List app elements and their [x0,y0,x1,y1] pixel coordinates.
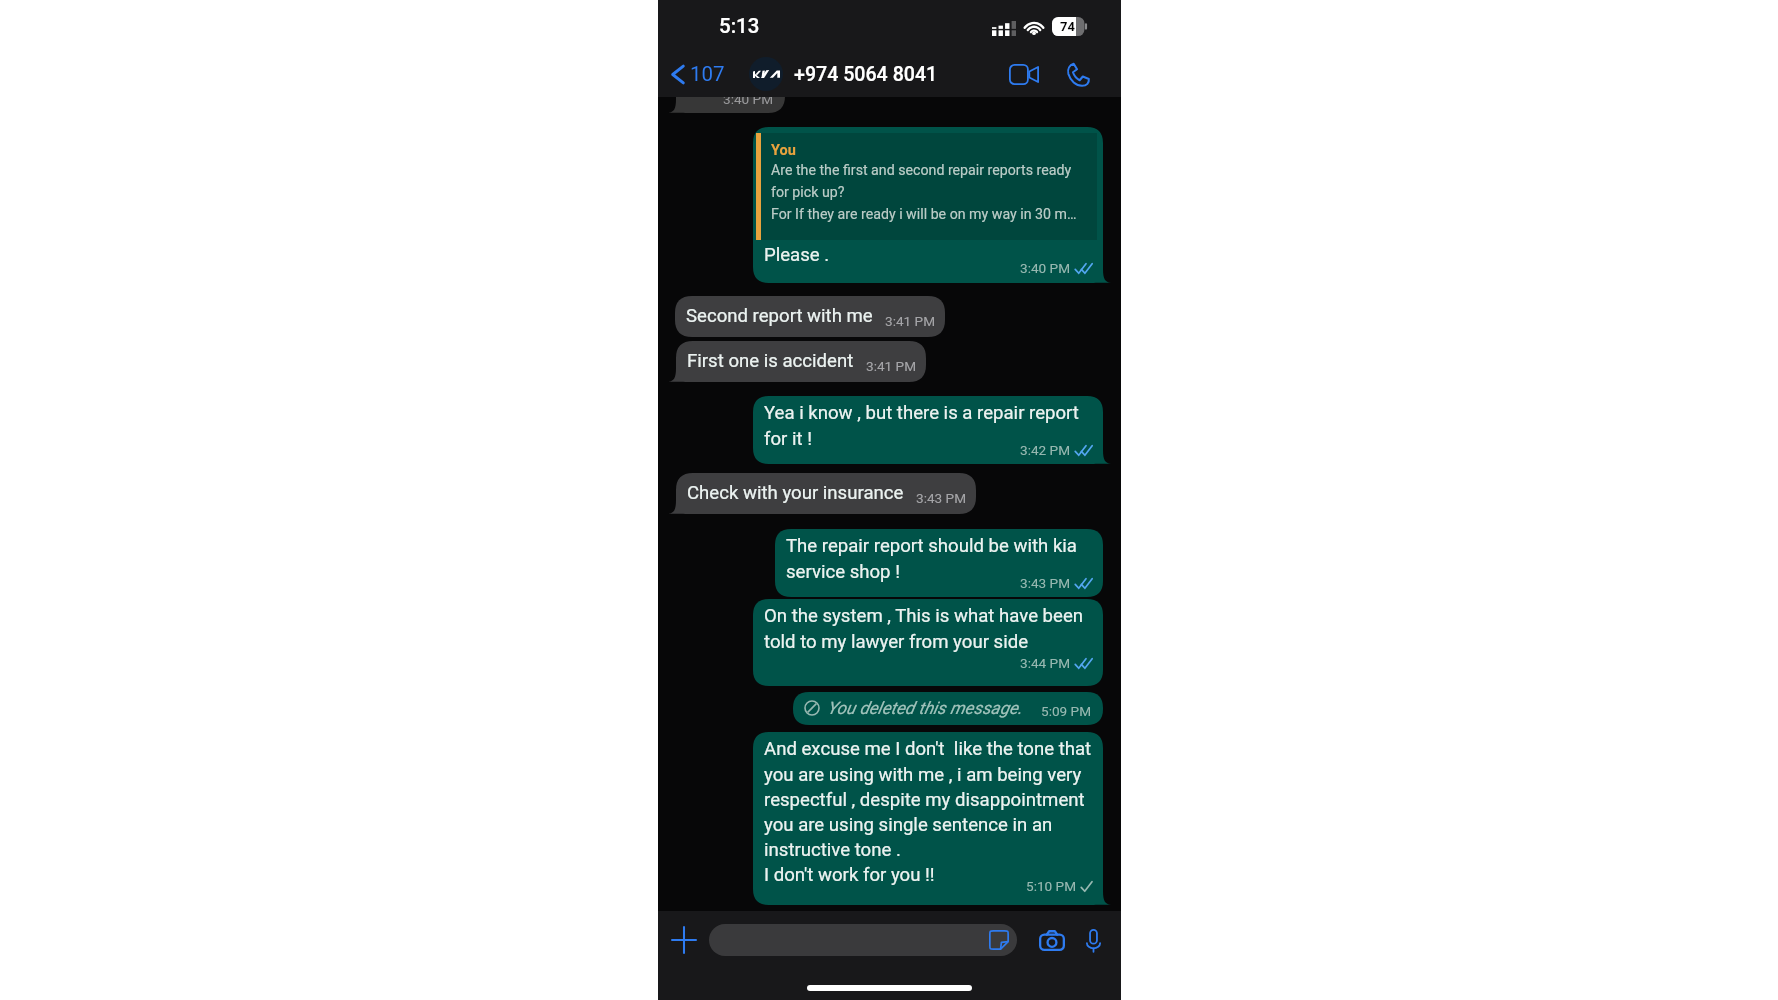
staticText: 5:09 PM [1041,703,1092,719]
staticText: Second report with me [686,305,873,327]
button[interactable]: Second report with me [675,296,945,337]
button[interactable]: And excuse me I don't like the tone that… [753,732,1111,905]
button[interactable]: You [753,127,1111,283]
staticText: +974 5064 8041 [794,63,938,86]
staticText: The repair report should be with kia ser… [786,535,1092,583]
button[interactable]: You deleted this message. [793,692,1103,725]
button[interactable]: 107 [667,58,729,90]
staticText: You deleted this message. [827,698,1023,718]
staticText: Check with your insurance [687,482,904,504]
button[interactable]: Attach [662,919,706,961]
button[interactable]: +974 5064 8041 [743,57,944,91]
staticText: 5:13 [719,14,760,38]
staticText: First one is accident [687,350,854,372]
button[interactable]: First one is accident [668,341,926,382]
button[interactable]: Voice message [1080,927,1106,953]
staticText: 3:43 PM [916,490,967,506]
staticText: And excuse me I don't like the tone that… [764,738,1092,886]
staticText: 3:44 PM [1020,655,1071,671]
button[interactable]: Message [709,924,1017,956]
button[interactable]: The repair report should be with kia ser… [775,529,1103,597]
staticText: On the system , This is what have been t… [764,605,1092,653]
button[interactable]: Yea i know , but there is a repair repor… [753,396,1111,464]
staticText: You [771,142,796,159]
button[interactable]: Check with your insurance [668,473,976,514]
staticText: Yea i know , but there is a repair repor… [764,402,1092,450]
staticText: 107 [690,62,725,86]
button[interactable]: Camera [1037,925,1067,955]
staticText: Are the the first and second repair repo… [771,162,1091,222]
staticText: 74 [1060,19,1075,34]
button[interactable]: On the system , This is what have been t… [753,599,1103,686]
staticText: 3:40 PM [1020,260,1071,276]
staticText: 5:10 PM [1026,878,1077,894]
staticText: 3:41 PM [885,313,936,329]
staticText: 3:41 PM [866,358,917,374]
button[interactable]: Call [1061,57,1095,91]
staticText: 3:42 PM [1020,442,1071,458]
button[interactable]: Video call [1005,55,1043,93]
staticText: Please . [764,244,830,266]
staticText: 3:40 PM [723,91,774,107]
staticText: 3:43 PM [1020,575,1071,591]
